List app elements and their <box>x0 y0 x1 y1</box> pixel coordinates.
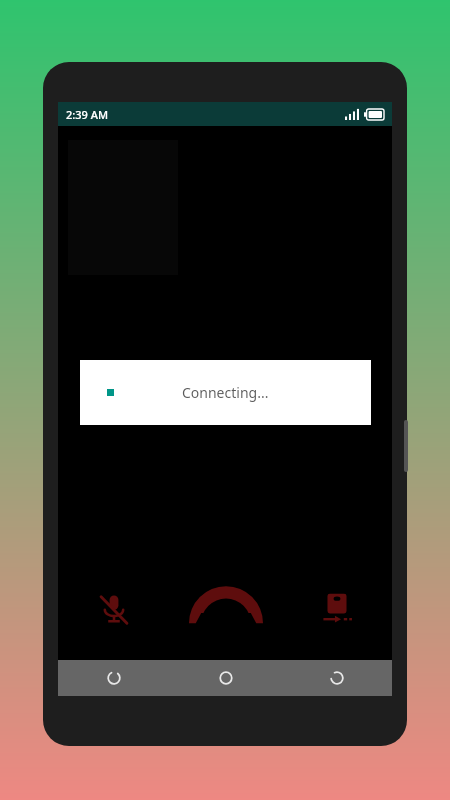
button[interactable]: Switch audio output <box>281 574 392 644</box>
button[interactable]: Home <box>170 660 281 696</box>
button[interactable]: Back <box>281 660 392 696</box>
button[interactable]: Recents <box>58 660 170 696</box>
button[interactable]: Mute microphone <box>58 574 170 644</box>
button[interactable]: End call <box>170 574 281 644</box>
staticText: Connecting... <box>182 383 269 402</box>
staticText: 2:39 AM <box>66 107 109 122</box>
